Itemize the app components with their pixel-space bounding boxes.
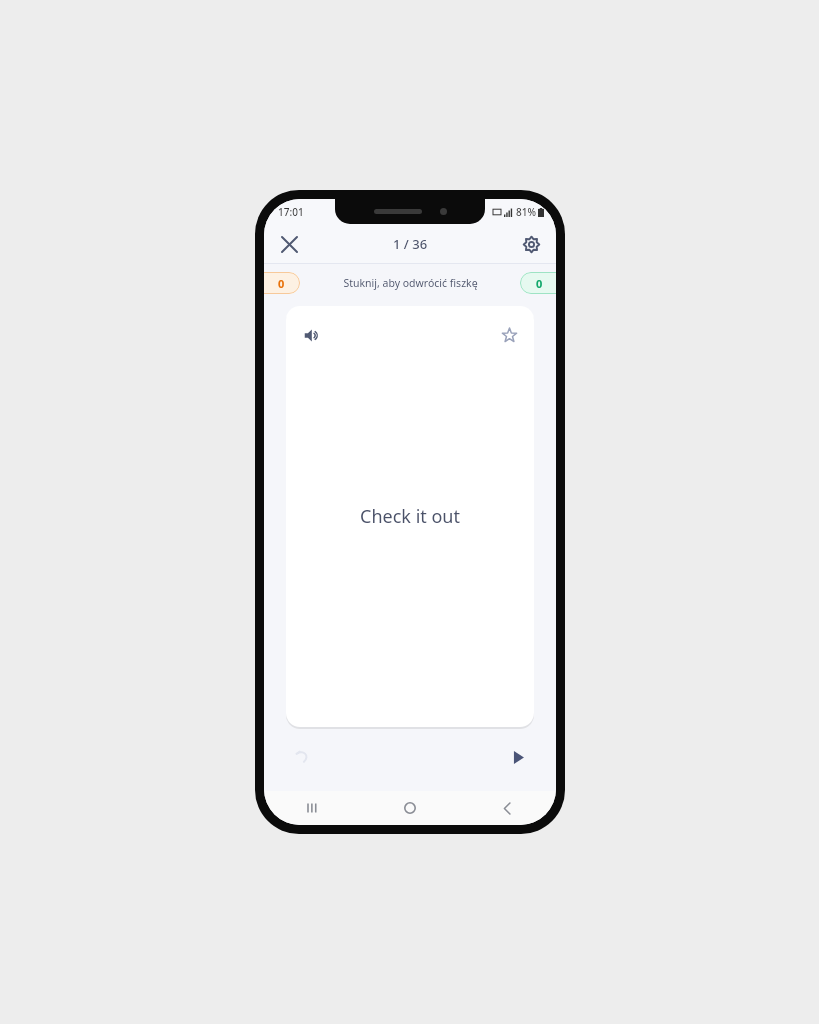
button[interactable]: Undo <box>286 741 318 773</box>
staticText: 17:01 <box>278 205 304 219</box>
button[interactable]: 0 <box>264 272 300 294</box>
button[interactable]: Play audio <box>298 322 324 348</box>
button[interactable]: Favorite <box>496 322 522 348</box>
button[interactable]: Play audio <box>286 306 534 727</box>
button[interactable]: Back <box>492 793 522 823</box>
staticText: 0 <box>278 276 285 291</box>
button[interactable]: Settings <box>514 227 548 261</box>
staticText: Stuknij, aby odwrócić fiszkę <box>343 276 478 290</box>
button[interactable]: Recent apps <box>298 793 328 823</box>
staticText: 1 / 36 <box>393 235 428 253</box>
button[interactable]: Close <box>272 227 306 261</box>
button[interactable]: Next <box>502 741 534 773</box>
staticText: 0 <box>536 276 543 291</box>
button[interactable]: Home <box>395 793 425 823</box>
staticText: Check it out <box>360 504 460 529</box>
button[interactable]: 0 <box>520 272 556 294</box>
staticText: 81% <box>516 205 536 219</box>
